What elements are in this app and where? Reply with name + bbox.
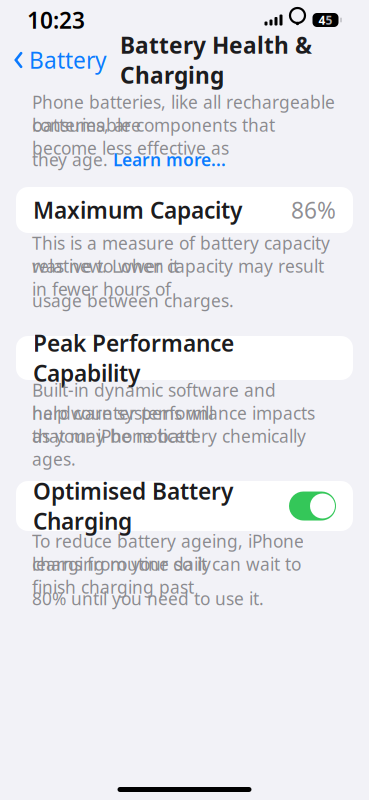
- staticText: consumable components that become less e…: [32, 113, 275, 159]
- button[interactable]: Maximum Capacity: [16, 187, 353, 233]
- staticText: Maximum Capacity: [33, 195, 242, 225]
- staticText: help counter performance impacts that ma…: [32, 401, 315, 447]
- staticText: they age.: [32, 148, 108, 171]
- staticText: 4: [318, 12, 325, 28]
- staticText: To reduce battery ageing, iPhone learns …: [32, 529, 304, 575]
- button[interactable]: Learn more...: [113, 148, 226, 171]
- button[interactable]: Peak Performance Capability: [16, 336, 353, 380]
- staticText: charging routine so it can wait to finis…: [32, 552, 301, 598]
- staticText: was new. Lower capacity may result in fe…: [32, 254, 324, 300]
- staticText: Phone batteries, like all rechargeable b…: [32, 90, 335, 136]
- button[interactable]: Battery: [13, 39, 111, 81]
- staticText: 80% until you need to use it.: [32, 587, 264, 610]
- staticText: Battery: [29, 45, 107, 75]
- staticText: Learn more...: [113, 148, 226, 171]
- staticText: Optimised Battery Charging: [33, 476, 233, 536]
- staticText: 5: [325, 12, 332, 28]
- staticText: Built-in dynamic software and hardware s…: [32, 378, 276, 424]
- button[interactable]: Optimised Battery Charging: [16, 481, 353, 531]
- staticText: usage between charges.: [32, 289, 234, 312]
- staticText: Peak Performance Capability: [33, 328, 234, 388]
- staticText: 86%: [291, 195, 336, 225]
- staticText: This is a measure of battery capacity re…: [32, 231, 330, 277]
- staticText: 10:23: [27, 5, 85, 35]
- staticText: Battery Health & Charging: [120, 30, 312, 90]
- staticText: as your iPhone battery chemically ages.: [32, 424, 306, 470]
